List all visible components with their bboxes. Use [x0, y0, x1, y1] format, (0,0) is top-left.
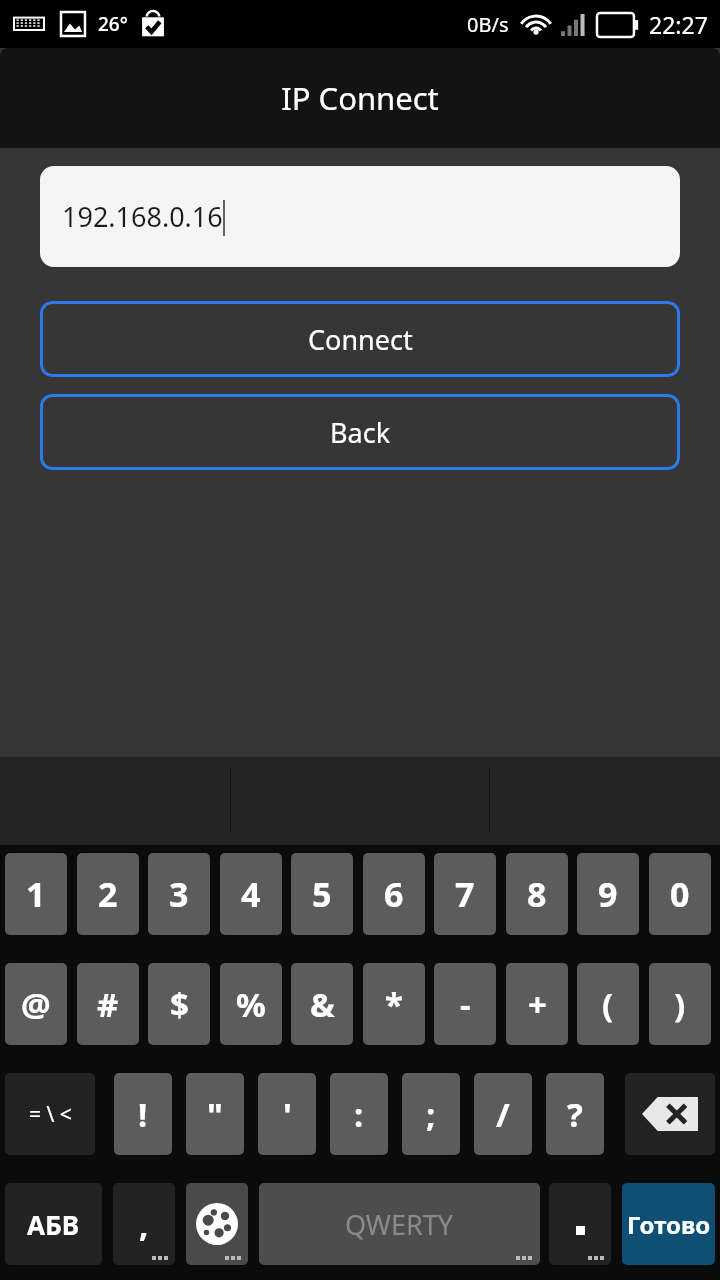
staticText: ?	[567, 1092, 583, 1137]
staticText: 2	[98, 871, 118, 917]
staticText: АБВ	[27, 1207, 80, 1242]
button[interactable]: /	[474, 1073, 532, 1155]
button[interactable]: (	[577, 963, 639, 1045]
button[interactable]: Change language	[186, 1183, 248, 1265]
button[interactable]: *	[363, 963, 425, 1045]
button[interactable]: АБВ	[5, 1183, 102, 1265]
staticText: Connect	[308, 321, 413, 358]
staticText: ;	[426, 1092, 436, 1137]
button[interactable]: QWERTY	[259, 1183, 540, 1265]
button[interactable]: +	[506, 963, 568, 1045]
button[interactable]: "	[186, 1073, 244, 1155]
button[interactable]: !	[114, 1073, 172, 1155]
button[interactable]: 1	[5, 853, 67, 935]
staticText: '	[283, 1092, 292, 1137]
button[interactable]: Готово	[622, 1183, 715, 1265]
button[interactable]: %	[220, 963, 282, 1045]
staticText: 0B/s	[467, 11, 509, 38]
button[interactable]: ,	[113, 1183, 175, 1265]
staticText: = \ <	[29, 1100, 72, 1129]
button[interactable]: ;	[402, 1073, 460, 1155]
button[interactable]: 0	[649, 853, 711, 935]
staticText: ,	[139, 1202, 149, 1247]
button[interactable]: 9	[577, 853, 639, 935]
button[interactable]: Connect	[40, 301, 680, 377]
button[interactable]: :	[330, 1073, 388, 1155]
staticText: $	[170, 982, 189, 1027]
staticText: 5	[312, 871, 332, 917]
staticText: 22:27	[649, 9, 708, 40]
button[interactable]: 3	[148, 853, 210, 935]
button[interactable]: = \ <	[5, 1073, 95, 1155]
button[interactable]	[549, 1183, 611, 1265]
staticText: 192.168.0.16	[62, 198, 223, 235]
button[interactable]: 2	[77, 853, 139, 935]
button[interactable]: 192.168.0.16	[40, 166, 680, 267]
staticText: 6	[384, 871, 404, 917]
button[interactable]: 4	[220, 853, 282, 935]
button[interactable]: )	[649, 963, 711, 1045]
staticText: +	[528, 982, 547, 1027]
staticText: 26°	[98, 11, 128, 37]
staticText: IP Connect	[281, 77, 439, 119]
staticText: /	[496, 1092, 510, 1137]
staticText: *	[385, 982, 403, 1027]
staticText: !	[138, 1092, 148, 1137]
button[interactable]: 6	[363, 853, 425, 935]
staticText: Back	[330, 414, 391, 451]
staticText: 9	[598, 871, 618, 917]
button[interactable]: @	[5, 963, 67, 1045]
staticText: #	[97, 982, 119, 1027]
button[interactable]: -	[434, 963, 496, 1045]
button[interactable]: ?	[546, 1073, 604, 1155]
button[interactable]: 5	[291, 853, 353, 935]
staticText: (	[602, 982, 614, 1027]
button[interactable]: 8	[506, 853, 568, 935]
staticText: 8	[527, 871, 547, 917]
staticText: 0	[670, 871, 690, 917]
staticText: @	[21, 982, 51, 1027]
staticText: -	[460, 982, 471, 1027]
button[interactable]: Back	[40, 394, 680, 470]
staticText: 7	[455, 871, 475, 917]
staticText: %	[236, 982, 266, 1027]
button[interactable]: #	[77, 963, 139, 1045]
button[interactable]: 7	[434, 853, 496, 935]
button[interactable]: &	[291, 963, 353, 1045]
staticText: )	[674, 982, 686, 1027]
staticText: :	[354, 1092, 364, 1137]
staticText: Готово	[627, 1208, 711, 1241]
button[interactable]: Backspace	[625, 1073, 715, 1155]
staticText: 1	[26, 871, 46, 917]
staticText: QWERTY	[345, 1206, 454, 1243]
staticText: 4	[241, 871, 261, 917]
staticText: &	[310, 982, 335, 1027]
button[interactable]: $	[148, 963, 210, 1045]
button[interactable]: '	[258, 1073, 316, 1155]
staticText: 3	[169, 871, 189, 917]
staticText: "	[207, 1092, 223, 1137]
